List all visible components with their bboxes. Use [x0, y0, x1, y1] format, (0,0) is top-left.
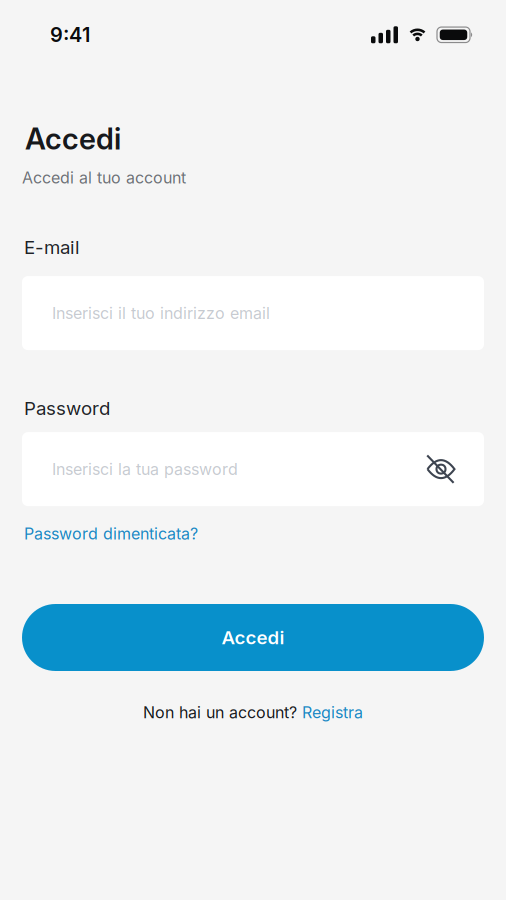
staticText: Registra: [302, 703, 363, 722]
staticText: Inserisci la tua password: [52, 460, 238, 479]
button[interactable]: Accedi: [22, 604, 484, 671]
button[interactable]: Mostra password: [426, 454, 456, 484]
button[interactable]: Registra: [302, 703, 363, 722]
staticText: Accedi al tuo account: [22, 168, 186, 187]
button[interactable]: Password dimenticata?: [24, 524, 198, 543]
button[interactable]: Inserisci la tua password: [22, 432, 484, 506]
staticText: 9:41: [50, 23, 90, 47]
button[interactable]: Inserisci il tuo indirizzo email: [22, 276, 484, 350]
staticText: Accedi: [25, 122, 121, 156]
staticText: Inserisci il tuo indirizzo email: [52, 304, 270, 323]
staticText: Accedi: [221, 626, 284, 648]
staticText: Password dimenticata?: [24, 524, 198, 543]
staticText: Password: [24, 397, 110, 419]
staticText: Non hai un account?: [143, 703, 297, 722]
staticText: E-mail: [24, 236, 80, 258]
